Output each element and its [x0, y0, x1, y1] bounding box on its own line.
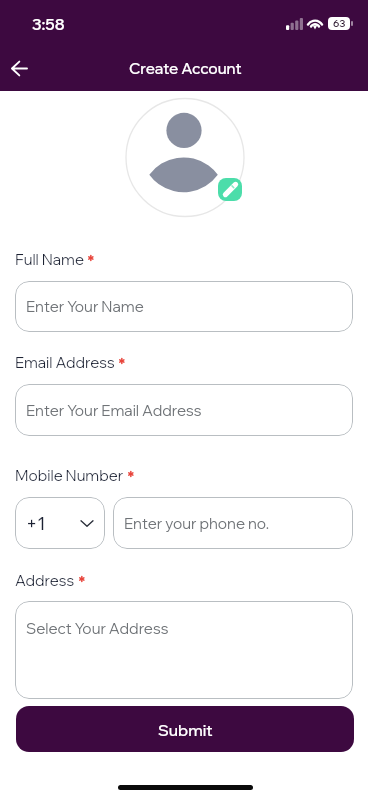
- staticText: Mobile Number: [15, 466, 124, 485]
- button[interactable]: Enter your phone no.: [113, 497, 353, 549]
- button[interactable]: +1: [15, 497, 105, 549]
- staticText: 63: [333, 17, 346, 30]
- staticText: Create Account: [129, 59, 242, 78]
- staticText: Enter Your Email Address: [26, 401, 202, 420]
- staticText: Full Name: [15, 250, 84, 269]
- staticText: Enter your phone no.: [124, 514, 270, 533]
- staticText: 3:58: [32, 14, 65, 34]
- button[interactable]: Select Your Address: [15, 601, 353, 699]
- button[interactable]: Submit: [16, 706, 354, 752]
- staticText: Address: [15, 571, 75, 590]
- button[interactable]: Enter Your Name: [15, 281, 353, 332]
- button[interactable]: Enter Your Email Address: [15, 384, 353, 436]
- staticText: Enter Your Name: [26, 297, 144, 316]
- staticText: Select Your Address: [26, 619, 169, 638]
- staticText: Email Address: [15, 353, 115, 372]
- staticText: +1: [26, 513, 46, 534]
- staticText: Submit: [158, 720, 213, 740]
- button[interactable]: Edit profile photo: [218, 178, 242, 201]
- button[interactable]: Back: [3, 52, 35, 84]
